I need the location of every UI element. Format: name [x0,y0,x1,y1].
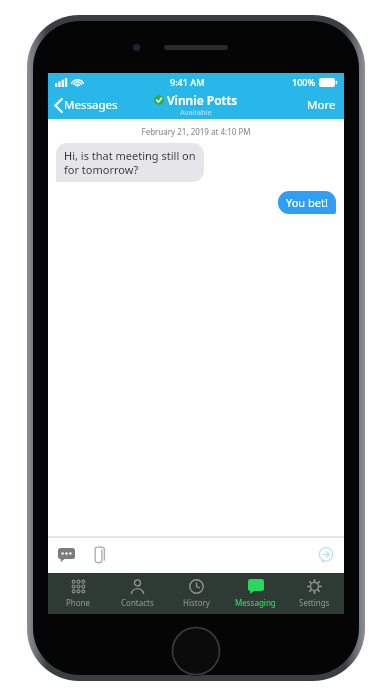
staticText: More [307,97,336,113]
staticText: Phone [66,597,91,608]
button[interactable]: Attach [90,543,108,567]
button[interactable]: Hi, is that meeting still on for tomorro… [56,143,204,182]
button[interactable]: Settings [285,573,344,614]
button[interactable]: You bet! [278,191,336,214]
staticText: Messages [64,97,118,113]
staticText: History [183,597,210,608]
button[interactable]: Quick replies [55,545,78,565]
staticText: Contacts [121,597,154,608]
button[interactable]: More [299,92,344,118]
button[interactable]: Send [315,544,337,566]
staticText: Hi, is that meeting still on for tomorro… [64,148,196,177]
button[interactable]: Messages [52,93,121,117]
button[interactable]: History [167,573,226,614]
staticText: 9:41 AM [170,76,205,88]
button[interactable]: Vinnie Potts [154,92,238,118]
staticText: You bet! [286,195,328,210]
button[interactable]: Phone [48,573,108,614]
staticText: 100% [292,76,316,88]
staticText: Settings [299,597,330,608]
button[interactable]: Messaging [226,573,285,614]
button[interactable]: Contacts [108,573,167,614]
staticText: Available [180,107,212,117]
staticText: February 21, 2019 at 4:10 PM [48,126,344,137]
staticText: Vinnie Potts [167,92,238,108]
staticText: Messaging [235,597,276,608]
